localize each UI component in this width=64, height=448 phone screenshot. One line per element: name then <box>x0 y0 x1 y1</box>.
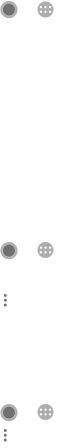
button[interactable]: More options <box>4 429 7 441</box>
button[interactable]: Assistant <box>37 1 53 17</box>
button[interactable]: More options <box>4 294 7 306</box>
button[interactable]: Assistant <box>37 242 53 258</box>
button[interactable]: Your avatar <box>0 1 18 18</box>
button[interactable]: Your avatar <box>0 404 18 421</box>
button[interactable]: Assistant <box>37 404 53 420</box>
button[interactable]: Your avatar <box>0 242 18 259</box>
